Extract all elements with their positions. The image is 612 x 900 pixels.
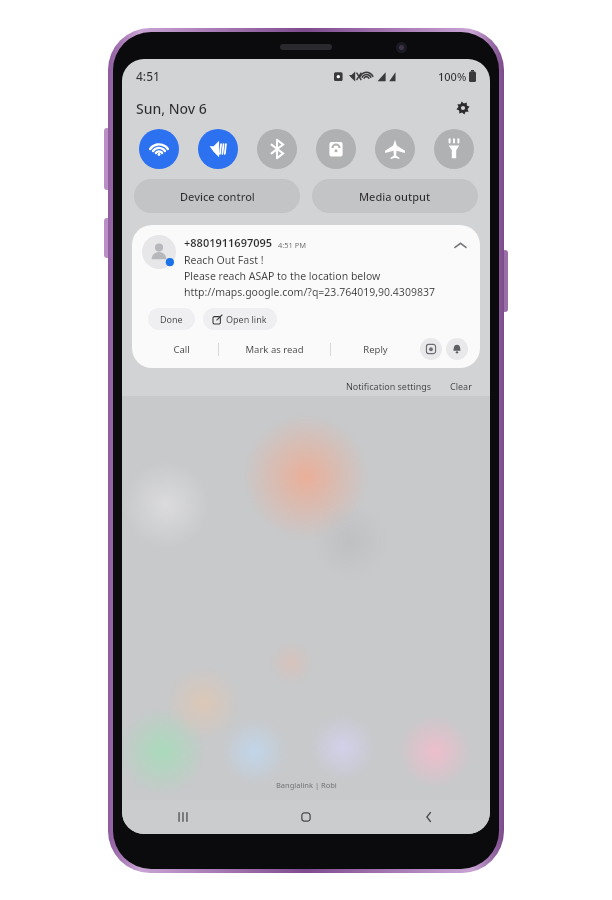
button[interactable]: Home	[244, 800, 367, 834]
button[interactable]: +8801911697095	[142, 235, 470, 299]
button[interactable]: Back	[367, 800, 490, 834]
button[interactable]: Notification settings	[446, 338, 468, 360]
staticText: Open link	[226, 313, 267, 325]
staticText: Reply	[363, 343, 388, 356]
button[interactable]: Lock	[316, 129, 356, 169]
button[interactable]: Screen capture	[420, 338, 442, 360]
button[interactable]: Open link	[213, 308, 267, 330]
button[interactable]: Call	[144, 330, 218, 368]
staticText: 4:51 PM	[278, 240, 307, 250]
staticText: Sun, Nov 6	[136, 99, 207, 118]
staticText: Done	[160, 313, 183, 325]
button[interactable]: Clear	[446, 376, 476, 396]
button[interactable]: Device control	[134, 179, 300, 213]
staticText: Clear	[450, 380, 472, 392]
button[interactable]: Notification settings	[342, 376, 436, 396]
button[interactable]: Media output	[312, 179, 478, 213]
button[interactable]: Bluetooth	[257, 129, 297, 169]
staticText: Please reach ASAP to the location below	[184, 269, 381, 283]
button[interactable]: Recents	[122, 800, 244, 834]
staticText: Notification settings	[346, 380, 432, 392]
staticText: Call	[173, 343, 190, 356]
staticText: 4:51	[136, 68, 160, 84]
staticText: +8801911697095	[184, 235, 273, 250]
staticText: Mark as read	[245, 343, 304, 356]
staticText: Banglalink | Robi	[276, 780, 337, 790]
button[interactable]: Mute	[198, 129, 238, 169]
staticText: http://maps.google.com/?q=23.764019,90.4…	[184, 285, 435, 299]
button[interactable]: Done	[160, 308, 183, 330]
button[interactable]: Reply	[331, 330, 420, 368]
button[interactable]: Collapse	[450, 235, 470, 255]
staticText: 100%	[438, 69, 467, 84]
button[interactable]: Settings	[450, 95, 476, 121]
staticText: Device control	[180, 189, 255, 204]
button[interactable]: Mark as read	[219, 330, 330, 368]
button[interactable]: Wi-Fi	[139, 129, 179, 169]
staticText: Media output	[359, 189, 431, 204]
staticText: Reach Out Fast !	[184, 253, 264, 267]
button[interactable]: Flashlight	[434, 129, 474, 169]
button[interactable]: Airplane mode	[375, 129, 415, 169]
